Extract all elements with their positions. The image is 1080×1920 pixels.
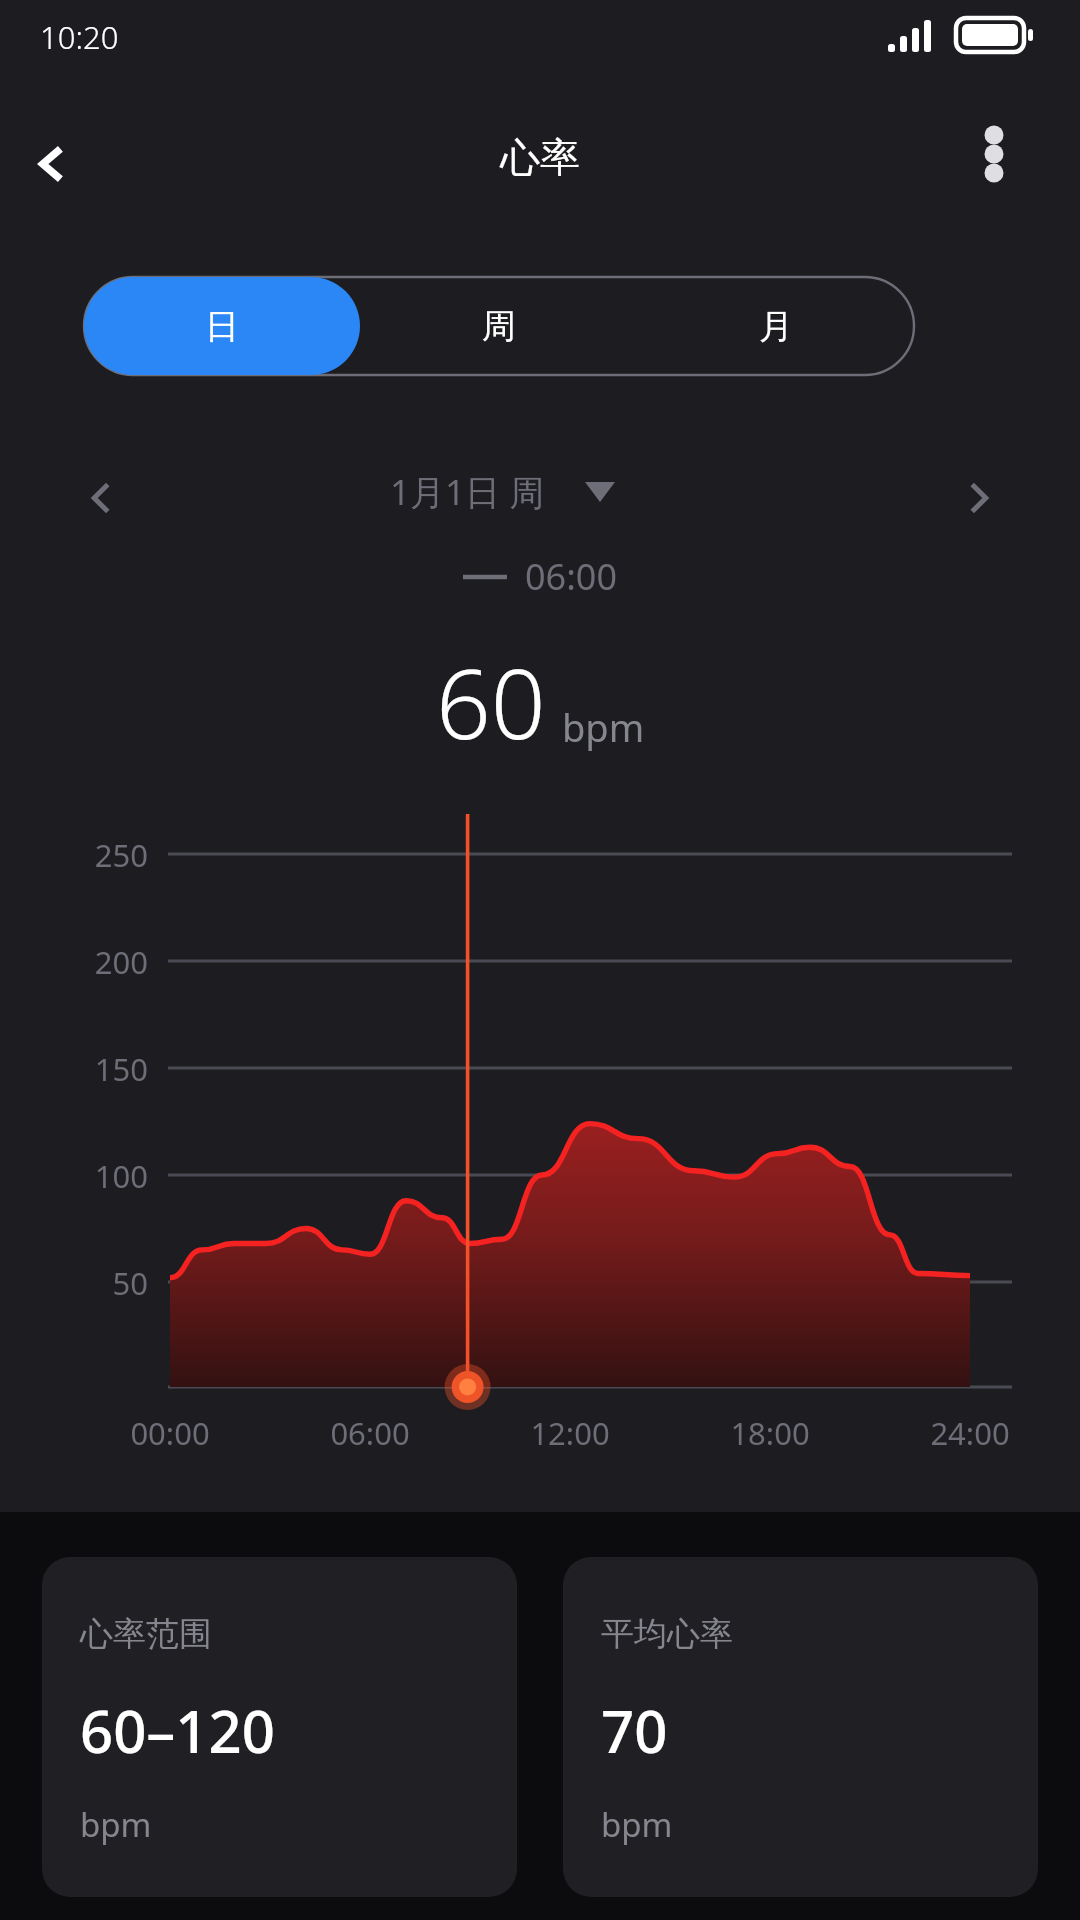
staticText: 心率范围 [80, 1613, 212, 1655]
button[interactable]: 周 [360, 277, 637, 375]
staticText: 心率 [500, 132, 580, 182]
staticText: 200 [30, 941, 148, 983]
button[interactable]: Previous day [58, 455, 144, 541]
staticText: bpm [562, 701, 645, 753]
button[interactable]: 月 [637, 277, 914, 375]
staticText: 平均心率 [601, 1613, 733, 1655]
staticText: 150 [30, 1048, 148, 1090]
button[interactable]: 平均心率 [563, 1557, 1038, 1897]
staticText: 日 [205, 305, 239, 348]
staticText: 50 [30, 1262, 148, 1304]
staticText: 月 [759, 305, 793, 348]
button[interactable]: More options [952, 112, 1036, 196]
staticText: 周 [482, 305, 516, 348]
staticText: 12:00 [480, 1412, 660, 1454]
staticText: 18:00 [680, 1412, 860, 1454]
staticText: 06:00 [280, 1412, 460, 1454]
staticText: 60–120 [80, 1691, 275, 1770]
button[interactable]: Next day [936, 455, 1022, 541]
button[interactable]: 心率范围 [42, 1557, 517, 1897]
staticText: 00:00 [80, 1412, 260, 1454]
staticText: 24:00 [880, 1412, 1060, 1454]
staticText: bpm [601, 1802, 673, 1847]
button[interactable]: Back [10, 122, 94, 206]
staticText: 250 [30, 834, 148, 876]
button[interactable]: 1月1日 周 [390, 468, 615, 516]
staticText: 100 [30, 1155, 148, 1197]
staticText: 06:00 [525, 552, 618, 601]
staticText: 10:20 [40, 16, 119, 58]
button[interactable]: 日 [84, 277, 360, 375]
staticText: bpm [80, 1802, 152, 1847]
staticText: 60 [436, 636, 546, 767]
staticText: 1月1日 周 [390, 468, 545, 516]
staticText: 70 [601, 1691, 668, 1770]
